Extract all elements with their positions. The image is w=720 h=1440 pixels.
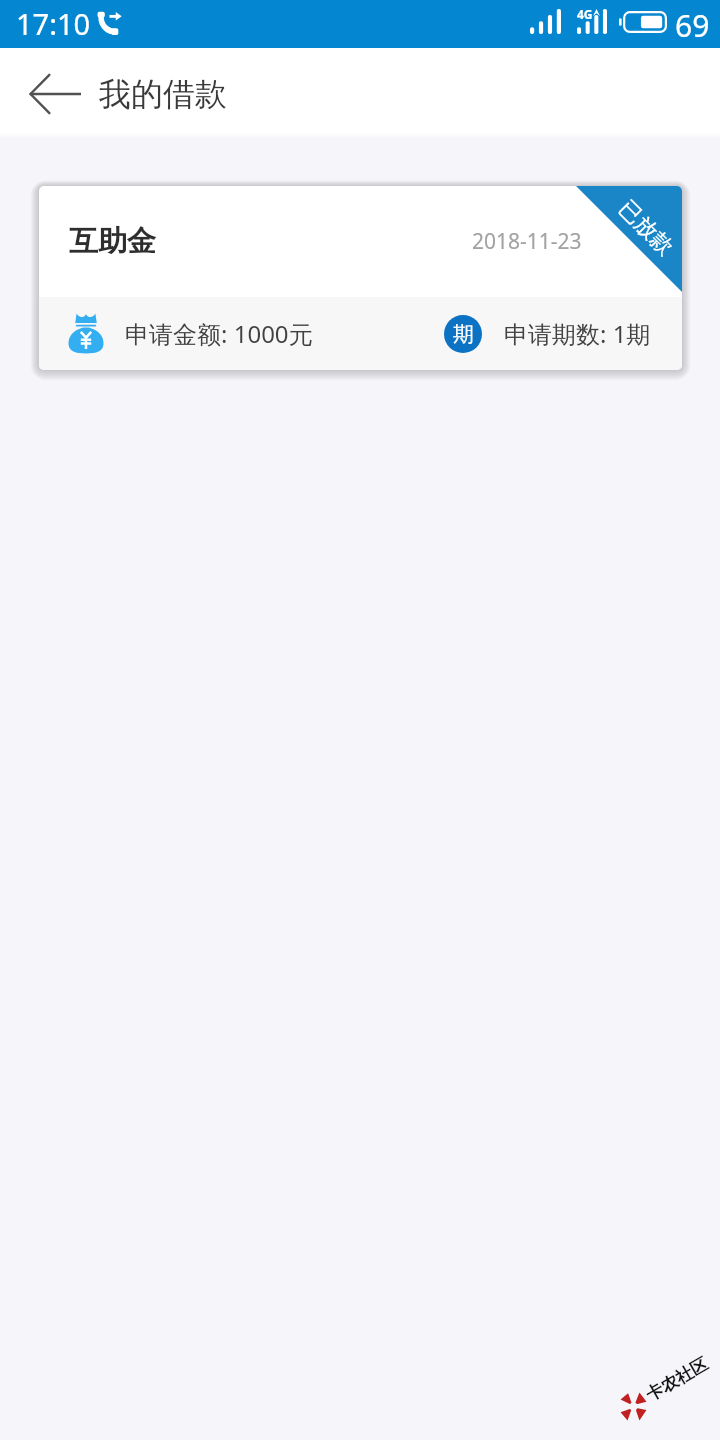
staticText: 卡农社区 <box>642 1353 712 1406</box>
staticText: 69 <box>675 5 710 46</box>
staticText: 我的借款 <box>99 74 227 114</box>
staticText: 4G <box>577 6 593 22</box>
staticText: 申请期数: 1期 <box>504 317 651 350</box>
staticText: 已放款 <box>613 195 679 261</box>
button[interactable]: Back <box>18 57 92 131</box>
staticText: 2018-11-23 <box>472 227 582 256</box>
staticText: 互助金 <box>69 223 156 260</box>
staticText: 申请金额: 1000元 <box>125 317 313 350</box>
staticText: 17:10 <box>16 4 91 43</box>
staticText: 期 <box>453 321 474 347</box>
button[interactable]: 互助金 <box>39 186 682 370</box>
